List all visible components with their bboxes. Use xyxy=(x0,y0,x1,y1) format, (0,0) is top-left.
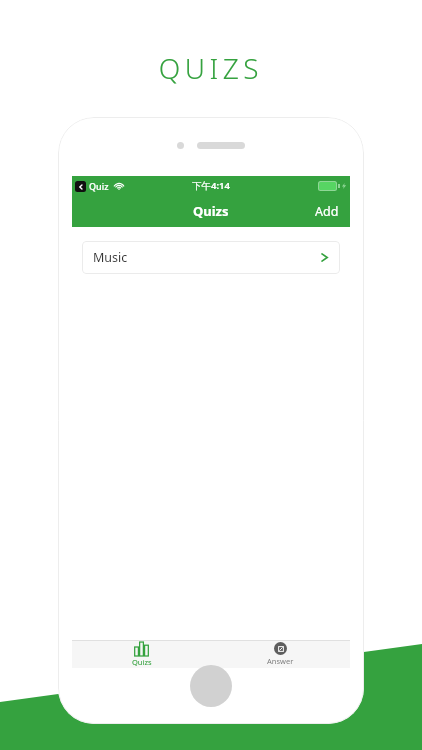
button[interactable]: Quizs xyxy=(72,640,211,668)
staticText: 下午4:14 xyxy=(192,179,230,192)
staticText: Music xyxy=(93,249,128,266)
button[interactable]: Add xyxy=(304,196,350,227)
staticText: QUIZS xyxy=(0,49,422,87)
button[interactable]: Home xyxy=(190,665,232,707)
staticText: Quizs xyxy=(193,202,229,220)
staticText: Add xyxy=(315,203,339,220)
staticText: Answer xyxy=(267,656,294,666)
button[interactable]: Answer xyxy=(211,640,350,668)
staticText: Quiz xyxy=(89,180,109,192)
staticText: Quizs xyxy=(132,657,152,667)
button[interactable]: Music xyxy=(82,241,340,274)
